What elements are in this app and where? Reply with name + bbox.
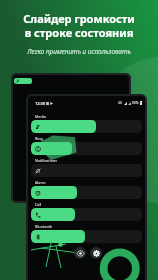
staticText: Bluetooth	[35, 224, 53, 229]
button[interactable]: Preview	[74, 247, 86, 259]
staticText: 12:38	[35, 101, 45, 106]
staticText: Слайдер громкости в строке состояния	[23, 11, 135, 41]
staticText: Notifications	[35, 158, 57, 163]
button[interactable]: Alarm	[31, 177, 142, 199]
staticText: Alarm	[35, 180, 46, 185]
button[interactable]: Call	[31, 199, 142, 221]
button[interactable]: Ring	[31, 133, 142, 155]
staticText: Media	[35, 114, 46, 119]
button[interactable]: Settings	[90, 247, 102, 259]
button[interactable]: Media	[31, 111, 142, 133]
button[interactable]: Notifications	[31, 155, 142, 177]
staticText: Ring	[35, 136, 43, 141]
staticText: Легко применить и использовать	[27, 47, 131, 56]
staticText: Call	[35, 202, 42, 207]
staticText: 4G	[118, 101, 123, 105]
staticText: 55%	[132, 101, 139, 105]
button[interactable]: Bluetooth	[31, 221, 142, 243]
